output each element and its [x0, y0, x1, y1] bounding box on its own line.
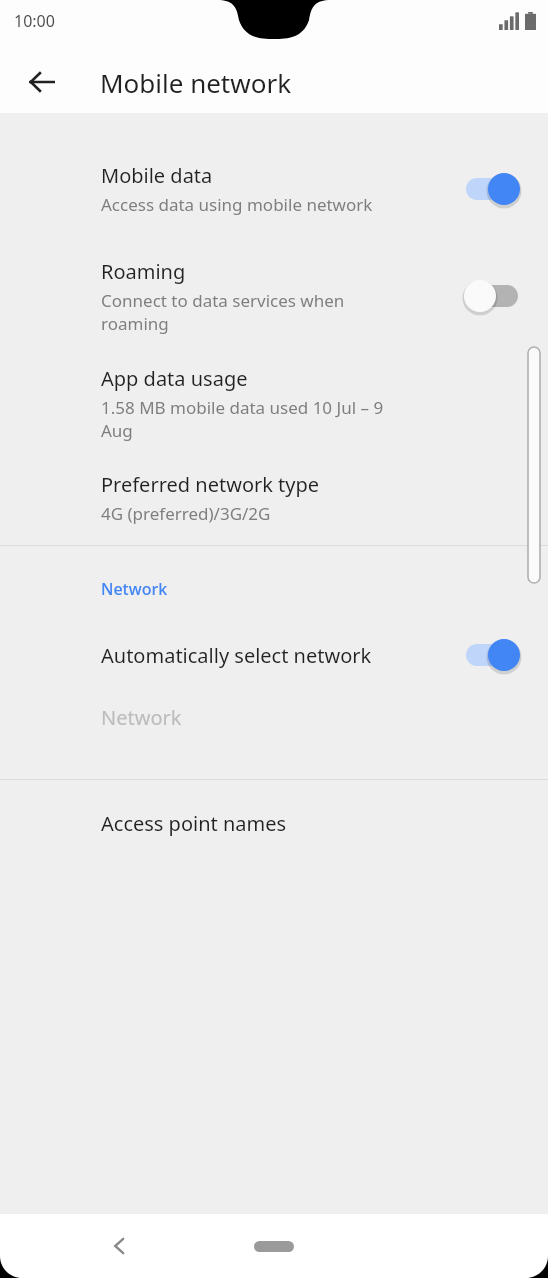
button[interactable]: App data usage [0, 355, 548, 451]
button[interactable]: Toggle on [460, 167, 524, 211]
button[interactable]: Mobile data [0, 141, 548, 237]
button[interactable]: Automatically select network [0, 624, 548, 686]
staticText: Mobile data [101, 162, 213, 189]
button[interactable]: Toggle on [460, 633, 524, 677]
staticText: Network [101, 578, 168, 600]
staticText: Preferred network type [101, 471, 320, 498]
staticText: Roaming [101, 258, 186, 285]
button[interactable]: Back [16, 56, 68, 108]
button[interactable]: Network [0, 686, 548, 748]
staticText: Network [101, 704, 182, 731]
staticText: Mobile network [100, 65, 292, 100]
button[interactable]: Toggle off [460, 274, 524, 318]
button[interactable]: Back [96, 1222, 144, 1270]
staticText: 4G (preferred)/3G/2G [101, 502, 391, 525]
staticText: Automatically select network [101, 642, 372, 669]
staticText: Access data using mobile network [101, 193, 391, 216]
button[interactable]: Home [238, 1230, 310, 1262]
staticText: Connect to data services when roaming [101, 289, 391, 335]
button[interactable]: Preferred network type [0, 451, 548, 545]
staticText: App data usage [101, 365, 248, 392]
button[interactable]: Access point names [0, 780, 548, 866]
staticText: 1.58 MB mobile data used 10 Jul – 9 Aug [101, 396, 391, 442]
button[interactable]: Roaming [0, 237, 548, 355]
staticText: Access point names [101, 810, 287, 837]
staticText: 10:00 [14, 10, 55, 32]
